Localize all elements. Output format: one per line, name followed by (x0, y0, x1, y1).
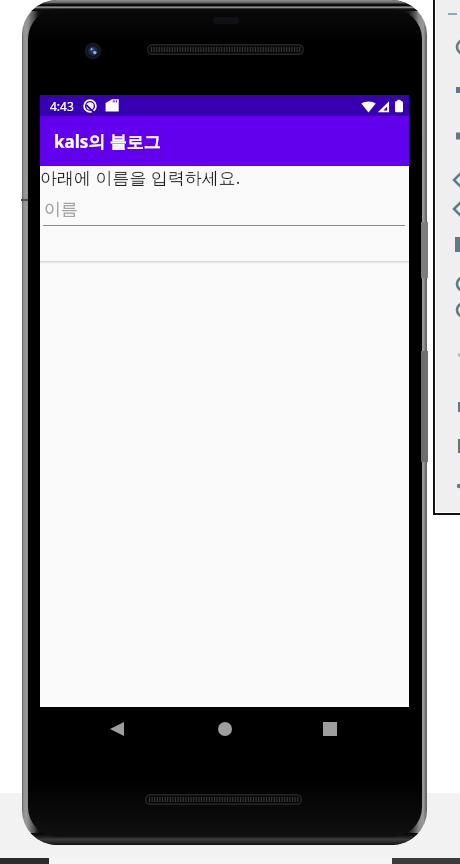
button[interactable]: Recent apps (307, 707, 352, 750)
button[interactable]: kals의 블로그 (40, 116, 409, 166)
staticText: 4:43 (50, 98, 74, 114)
button[interactable]: 이름 (43, 199, 405, 226)
button[interactable]: Home (202, 707, 247, 750)
staticText: kals의 블로그 (54, 130, 161, 153)
button[interactable]: Back (94, 707, 139, 750)
staticText: 이름 (44, 199, 78, 220)
staticText: 아래에 이름을 입력하세요. (40, 166, 241, 189)
